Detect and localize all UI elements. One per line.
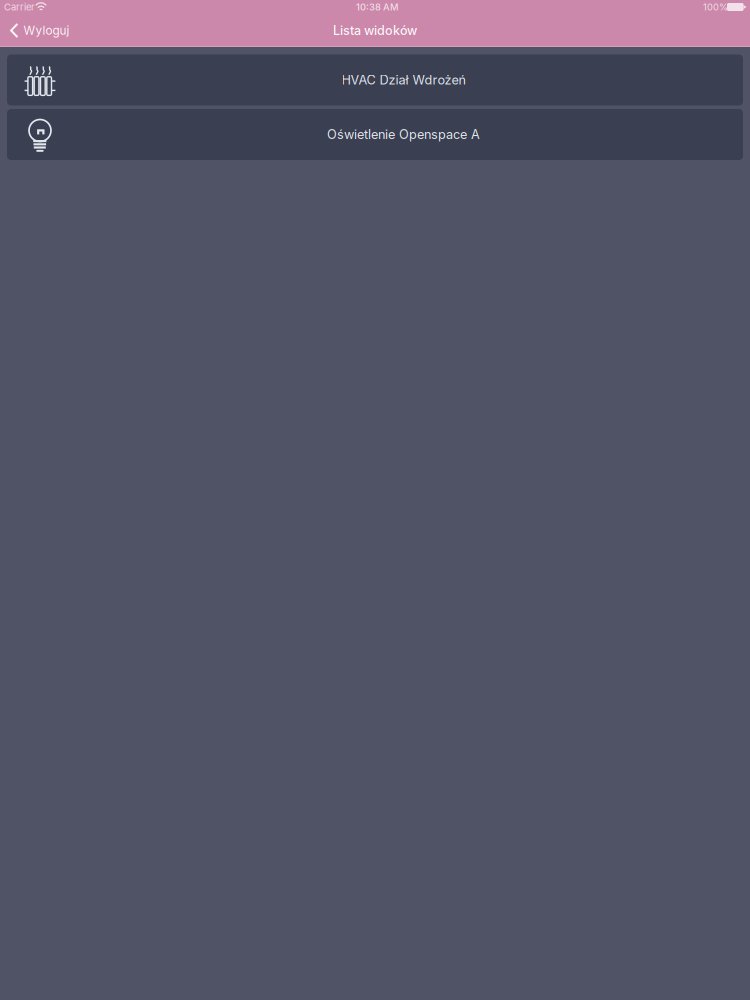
staticText: Carrier <box>4 1 35 13</box>
staticText: Lista widoków <box>333 23 417 38</box>
button[interactable]: Oświetlenie Openspace A <box>7 109 743 160</box>
button[interactable]: Wyloguj <box>0 14 79 47</box>
staticText: Oświetlenie Openspace A <box>327 127 480 142</box>
staticText: Wyloguj <box>23 23 69 38</box>
button[interactable]: HVAC Dział Wdrożeń <box>7 54 743 105</box>
staticText: 100% <box>703 1 728 13</box>
staticText: HVAC Dział Wdrożeń <box>341 72 465 88</box>
staticText: 10:38 AM <box>356 1 399 13</box>
